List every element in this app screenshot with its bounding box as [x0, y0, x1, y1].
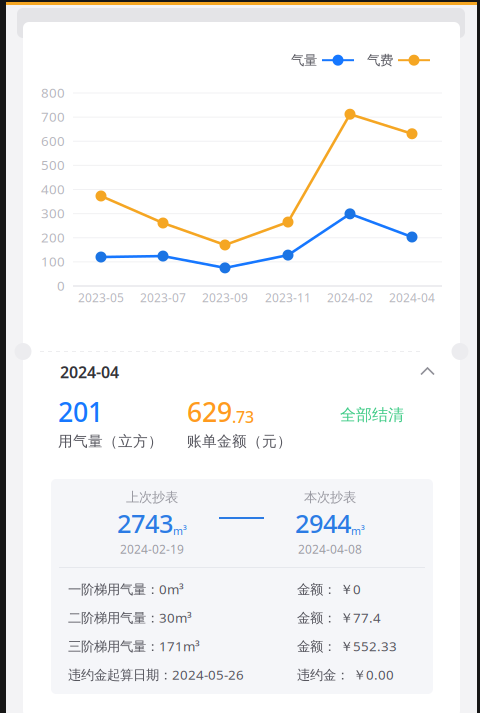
- staticText: 700: [41, 108, 65, 125]
- staticText: 气量: [291, 52, 317, 68]
- staticText: 二阶梯用气量：30m³: [68, 609, 192, 626]
- staticText: 用气量（立方）: [58, 432, 163, 450]
- staticText: 2944: [295, 506, 351, 540]
- staticText: 300: [41, 204, 65, 222]
- staticText: 2024-04-08: [298, 541, 362, 557]
- staticText: 金额： ￥77.4: [297, 609, 381, 626]
- staticText: 全部结清: [340, 405, 404, 425]
- staticText: 100: [41, 252, 65, 270]
- staticText: 一阶梯用气量：0m³: [68, 580, 184, 598]
- staticText: 400: [41, 180, 65, 198]
- staticText: 2023-09: [202, 289, 248, 305]
- staticText: 金额： ￥552.33: [297, 637, 397, 655]
- staticText: m³: [173, 524, 187, 538]
- staticText: 500: [41, 156, 65, 174]
- staticText: 账单金额（元）: [187, 432, 292, 450]
- staticText: 2023-11: [265, 289, 311, 305]
- staticText: 2024-04: [60, 361, 119, 383]
- staticText: 800: [41, 84, 65, 101]
- staticText: 201: [58, 394, 103, 429]
- staticText: 2023-07: [140, 289, 186, 305]
- staticText: 200: [41, 228, 65, 246]
- staticText: 2024-04: [389, 289, 435, 305]
- button[interactable]: 全部结清: [340, 394, 404, 425]
- button[interactable]: 2024-04: [60, 363, 436, 381]
- staticText: 2743: [117, 506, 173, 540]
- staticText: 金额： ￥0: [297, 580, 361, 598]
- staticText: 2023-05: [78, 289, 124, 305]
- staticText: 629: [187, 394, 232, 429]
- staticText: m³: [351, 524, 365, 538]
- staticText: 2024-02: [327, 289, 373, 305]
- staticText: 本次抄表: [304, 489, 356, 505]
- staticText: 违约金： ￥0.00: [297, 666, 394, 683]
- staticText: 违约金起算日期：2024-05-26: [68, 666, 244, 683]
- staticText: 600: [41, 132, 65, 150]
- staticText: 0: [57, 277, 65, 294]
- staticText: 上次抄表: [126, 489, 178, 505]
- staticText: 2024-02-19: [120, 541, 184, 557]
- staticText: 气费: [367, 52, 393, 68]
- staticText: 三阶梯用气量：171m³: [68, 637, 200, 655]
- staticText: .73: [232, 406, 254, 427]
